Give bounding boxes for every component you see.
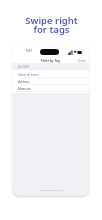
button[interactable]: Done xyxy=(75,58,89,64)
button[interactable]: Measure xyxy=(12,85,89,92)
staticText: Filter by Tag xyxy=(41,59,60,63)
staticText: Done xyxy=(78,59,86,63)
other: Status icons xyxy=(68,50,79,55)
button[interactable]: Address xyxy=(12,78,89,85)
staticText: Measure xyxy=(18,87,31,91)
staticText: 9:41 xyxy=(26,49,32,53)
button[interactable]: Show all items xyxy=(12,71,89,78)
staticText: Address xyxy=(18,80,30,84)
staticText: Show all items xyxy=(18,73,39,77)
staticText: Swipe right for tags xyxy=(25,14,78,36)
staticText: ALL TAGS xyxy=(18,65,30,69)
